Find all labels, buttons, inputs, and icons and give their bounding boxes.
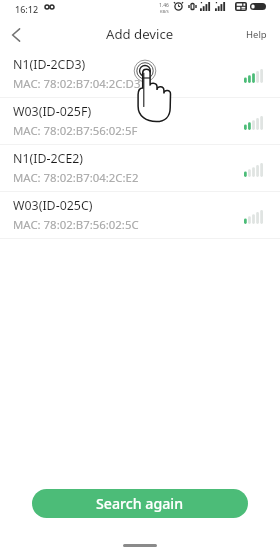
staticText: 1.46 [159, 2, 169, 9]
staticText: Search again [96, 494, 184, 513]
button[interactable]: W03(ID-025C) [0, 192, 280, 238]
staticText: N1(ID-2CD3) [13, 56, 86, 73]
staticText: MAC: 78:02:B7:04:2C:D3 [13, 76, 141, 92]
button[interactable]: N1(ID-2CD3) [0, 51, 280, 97]
staticText: KB/S [160, 9, 169, 14]
staticText: Help [246, 28, 267, 41]
staticText: W03(ID-025C) [13, 197, 93, 214]
button[interactable]: W03(ID-025F) [0, 98, 280, 144]
staticText: N1(ID-2CE2) [13, 150, 84, 167]
staticText: MAC: 78:02:B7:04:2C:E2 [13, 170, 139, 186]
staticText: 16:12 [15, 3, 39, 15]
staticText: MAC: 78:02:B7:56:02:5C [13, 217, 139, 233]
staticText: Add device [106, 25, 174, 43]
staticText: MAC: 78:02:B7:56:02:5F [13, 123, 138, 139]
button[interactable]: Search again [32, 489, 248, 518]
staticText: W03(ID-025F) [13, 103, 92, 120]
button[interactable]: Back [0, 19, 31, 50]
button[interactable]: N1(ID-2CE2) [0, 145, 280, 191]
button[interactable]: Help [246, 28, 267, 41]
